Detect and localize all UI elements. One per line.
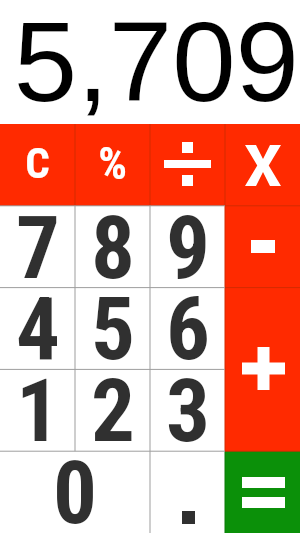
staticText: 3 xyxy=(166,360,210,462)
button[interactable]: % xyxy=(75,124,150,206)
staticText: 6 xyxy=(166,278,210,380)
staticText: % xyxy=(98,137,127,190)
staticText: C xyxy=(25,138,50,188)
staticText: 4 xyxy=(16,278,60,380)
staticText: 5 xyxy=(91,278,135,380)
staticText: 5,709 xyxy=(13,0,299,125)
button[interactable]: 9 xyxy=(150,206,225,287)
button[interactable]: 7 xyxy=(0,206,75,287)
button[interactable]: 4 xyxy=(0,287,75,369)
staticText: 7 xyxy=(16,197,60,299)
button[interactable]: Divide xyxy=(150,124,225,206)
staticText: 2 xyxy=(91,360,135,462)
button[interactable]: Multiply xyxy=(225,124,300,206)
button[interactable]: 0 xyxy=(0,451,150,533)
button[interactable]: C xyxy=(0,124,75,206)
button[interactable]: 5 xyxy=(75,287,150,369)
button[interactable]: 3 xyxy=(150,369,225,451)
button[interactable]: 8 xyxy=(75,206,150,287)
button[interactable]: Decimal point xyxy=(150,451,225,533)
button[interactable]: 6 xyxy=(150,287,225,369)
staticText: 1 xyxy=(16,360,60,462)
button[interactable]: 2 xyxy=(75,369,150,451)
button[interactable]: Minus xyxy=(225,206,300,287)
button[interactable]: Equals xyxy=(225,451,300,533)
staticText: 9 xyxy=(166,197,210,299)
button[interactable]: Plus xyxy=(225,287,300,451)
button[interactable]: 1 xyxy=(0,369,75,451)
staticText: 8 xyxy=(91,197,135,299)
staticText: 0 xyxy=(53,442,97,533)
